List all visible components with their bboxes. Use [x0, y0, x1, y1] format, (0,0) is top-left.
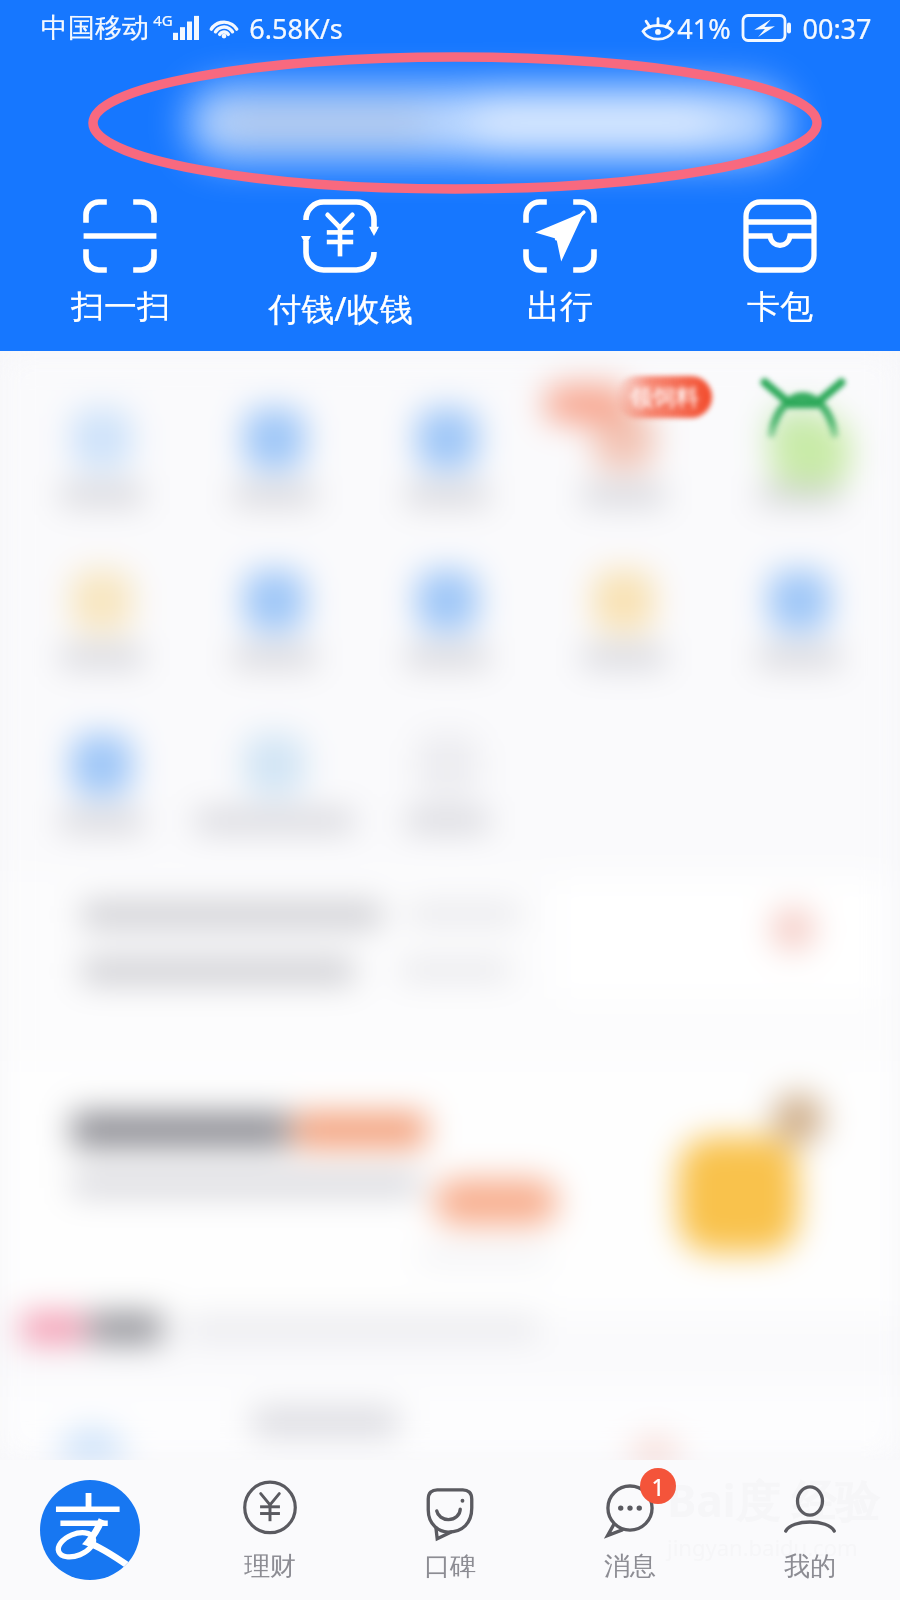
staticText: 付钱/收钱	[268, 286, 413, 331]
staticText: 卡包	[747, 286, 813, 328]
staticText: 理财	[244, 1550, 296, 1583]
staticText: 1	[651, 1471, 665, 1502]
staticText: 领饲料	[630, 383, 699, 412]
staticText: 6.58K/s	[249, 10, 343, 47]
staticText: 中国移动	[41, 11, 149, 45]
staticText: 我的	[784, 1550, 836, 1583]
staticText: 口碑	[424, 1550, 476, 1583]
button[interactable]: 1	[540, 1460, 720, 1600]
staticText: 41%	[677, 10, 731, 47]
button[interactable]: 付钱/收钱	[240, 193, 440, 351]
staticText: 消息	[604, 1550, 656, 1583]
button[interactable]: 理财	[180, 1460, 360, 1600]
staticText: 出行	[527, 286, 593, 328]
staticText: 扫一扫	[71, 286, 170, 328]
staticText: 00:37	[802, 10, 872, 47]
staticText: 4G	[153, 10, 173, 30]
button[interactable]: 首页	[0, 1460, 180, 1600]
staticText: Bai度 经验	[667, 1470, 880, 1530]
button[interactable]: 卡包	[680, 193, 880, 351]
button[interactable]: 我的	[720, 1460, 900, 1600]
staticText: jingyan.baidu.com	[667, 1532, 858, 1562]
button[interactable]: 扫一扫	[20, 193, 220, 351]
button[interactable]: 出行	[460, 193, 660, 351]
button[interactable]: 领饲料	[616, 376, 712, 418]
button[interactable]: 口碑	[360, 1460, 540, 1600]
